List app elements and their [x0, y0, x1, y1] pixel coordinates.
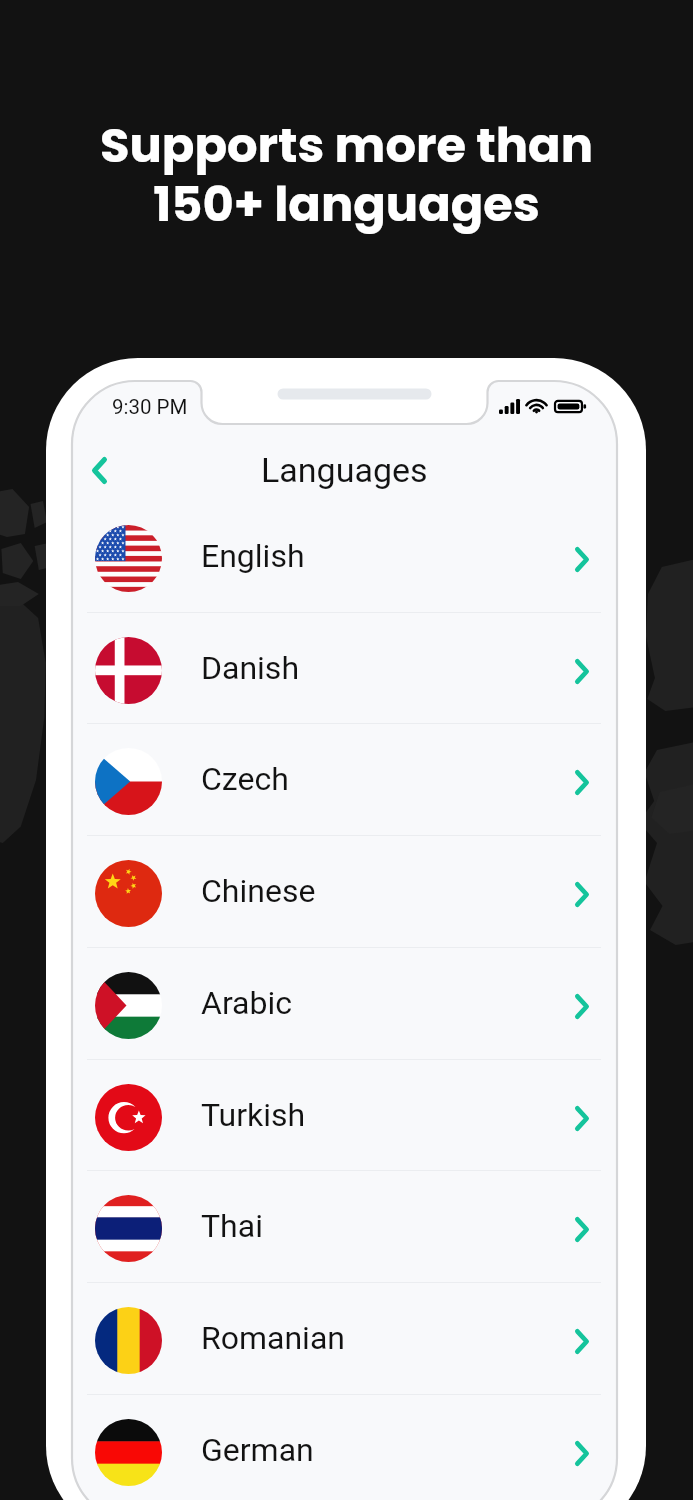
- button[interactable]: English: [72, 500, 617, 612]
- staticText: English: [201, 537, 305, 575]
- staticText: Thai: [201, 1207, 263, 1245]
- button[interactable]: Arabic: [72, 947, 617, 1059]
- staticText: 9:30 PM: [112, 395, 188, 419]
- button[interactable]: Thai: [72, 1170, 617, 1282]
- button[interactable]: Romanian: [72, 1282, 617, 1394]
- staticText: Czech: [201, 760, 289, 798]
- staticText: Turkish: [201, 1096, 306, 1134]
- staticText: Supports more than 150+ languages: [0, 112, 693, 237]
- staticText: Languages: [261, 450, 428, 490]
- staticText: Danish: [201, 649, 299, 687]
- button[interactable]: Back: [73, 444, 125, 496]
- staticText: Arabic: [201, 984, 292, 1022]
- button[interactable]: Turkish: [72, 1059, 617, 1171]
- button[interactable]: German: [72, 1394, 617, 1500]
- staticText: Romanian: [201, 1319, 345, 1357]
- staticText: German: [201, 1431, 314, 1469]
- button[interactable]: Danish: [72, 612, 617, 724]
- staticText: Chinese: [201, 872, 316, 910]
- button[interactable]: Chinese: [72, 835, 617, 947]
- button[interactable]: Czech: [72, 723, 617, 835]
